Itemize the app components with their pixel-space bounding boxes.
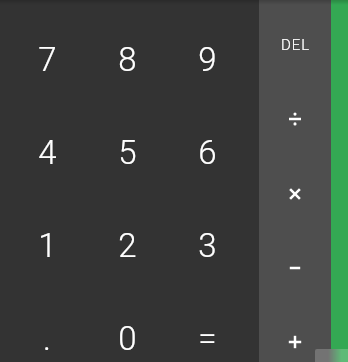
button[interactable]: 2 — [87, 199, 167, 292]
button[interactable]: 7 — [7, 13, 87, 106]
staticText: 7 — [38, 40, 57, 79]
button[interactable]: 6 — [167, 106, 247, 199]
button[interactable]: 9 — [167, 13, 247, 106]
button[interactable]: 5 — [87, 106, 167, 199]
staticText: DEL — [281, 36, 310, 54]
staticText: 8 — [118, 40, 137, 79]
button[interactable]: 0 — [87, 292, 167, 362]
button[interactable]: Multiply — [259, 157, 331, 231]
staticText: 1 — [38, 226, 57, 265]
button[interactable]: = — [167, 292, 247, 362]
staticText: 5 — [118, 133, 137, 172]
staticText: 0 — [118, 319, 137, 358]
button[interactable]: Add — [259, 305, 331, 362]
button[interactable]: 4 — [7, 106, 87, 199]
staticText: 6 — [198, 133, 217, 172]
staticText: 9 — [198, 40, 217, 79]
staticText: = — [198, 319, 217, 358]
button[interactable]: Subtract — [259, 231, 331, 305]
staticText: 4 — [38, 133, 57, 172]
button[interactable]: 8 — [87, 13, 167, 106]
button[interactable]: 1 — [7, 199, 87, 292]
button[interactable]: . — [7, 292, 87, 362]
staticText: 3 — [198, 226, 217, 265]
button[interactable]: 3 — [167, 199, 247, 292]
button[interactable]: Divide — [259, 82, 331, 156]
button[interactable]: DEL — [259, 8, 331, 82]
staticText: . — [43, 319, 51, 358]
staticText: 2 — [118, 226, 137, 265]
